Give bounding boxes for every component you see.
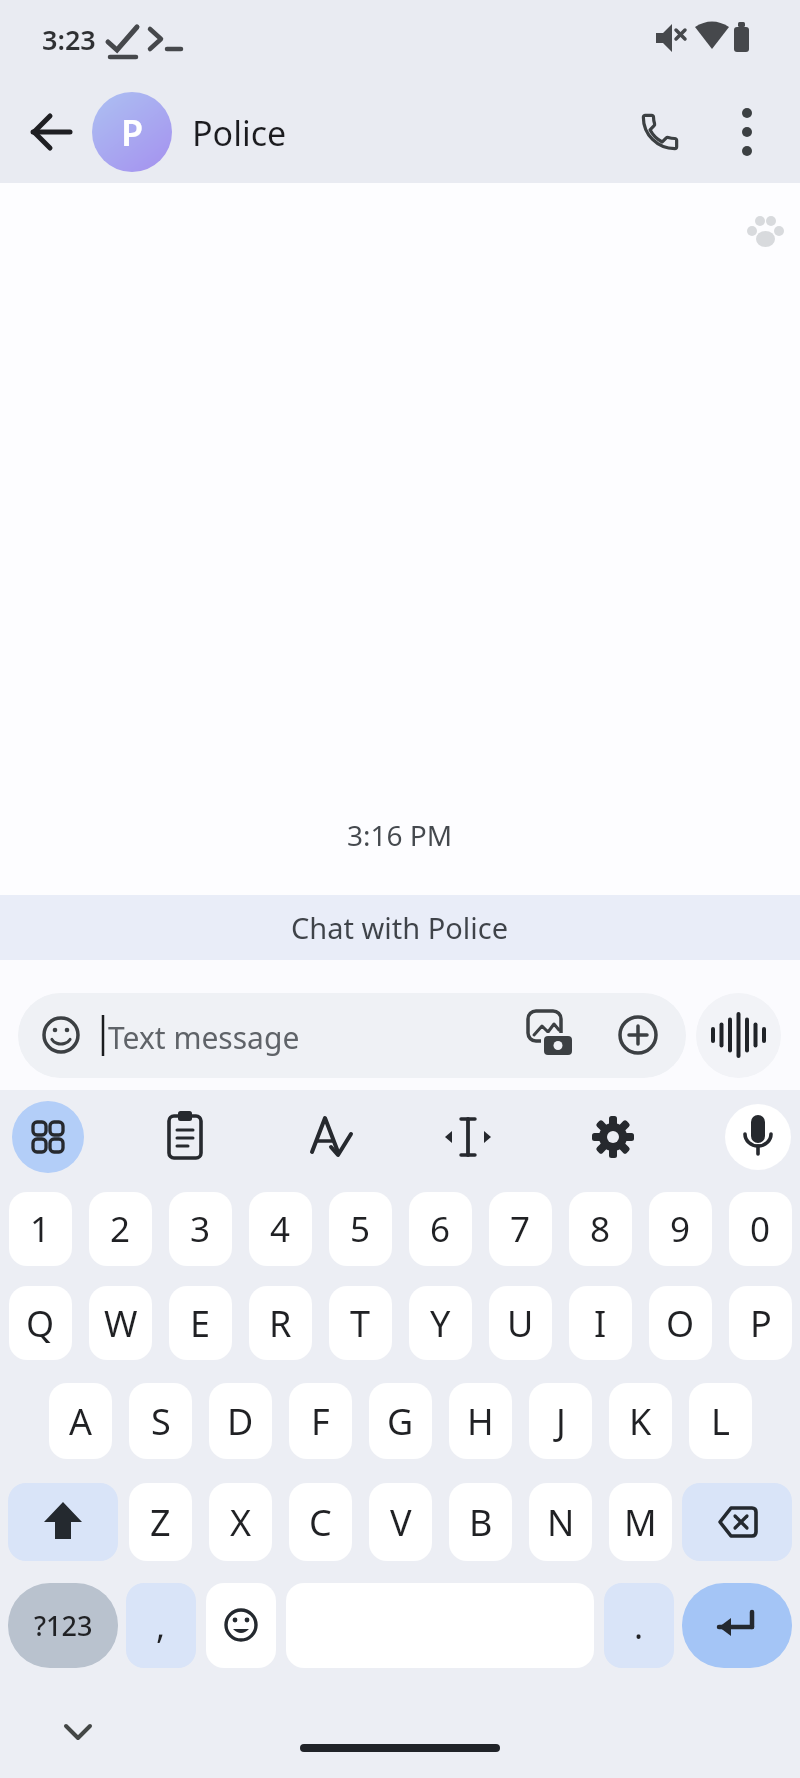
staticText: 3:16 PM bbox=[347, 816, 453, 854]
button[interactable] bbox=[682, 1583, 792, 1668]
staticText: F bbox=[311, 1397, 330, 1446]
staticText: B bbox=[469, 1498, 493, 1547]
button[interactable]: X bbox=[209, 1483, 272, 1561]
staticText: D bbox=[227, 1397, 254, 1446]
button[interactable] bbox=[48, 1702, 108, 1762]
staticText: M bbox=[624, 1498, 657, 1547]
button[interactable]: Z bbox=[129, 1483, 192, 1561]
button[interactable]: 1 bbox=[9, 1192, 72, 1266]
staticText: Z bbox=[150, 1498, 171, 1547]
button[interactable]: ?123 bbox=[8, 1583, 118, 1668]
staticText: O bbox=[666, 1299, 695, 1348]
button[interactable]: H bbox=[449, 1383, 512, 1459]
staticText: X bbox=[230, 1498, 252, 1547]
button[interactable] bbox=[150, 1102, 220, 1172]
staticText: L bbox=[711, 1397, 730, 1446]
staticText: 8 bbox=[590, 1205, 611, 1253]
button[interactable]: , bbox=[126, 1583, 196, 1668]
button[interactable]: S bbox=[129, 1383, 192, 1459]
staticText: N bbox=[547, 1498, 575, 1547]
staticText: Q bbox=[26, 1299, 55, 1348]
button[interactable]: B bbox=[449, 1483, 512, 1561]
button[interactable]: V bbox=[369, 1483, 432, 1561]
staticText: 3 bbox=[190, 1205, 211, 1253]
button[interactable]: F bbox=[289, 1383, 352, 1459]
button[interactable]: N bbox=[529, 1483, 592, 1561]
staticText: 2 bbox=[110, 1205, 131, 1253]
staticText: H bbox=[467, 1397, 494, 1446]
staticText: 1 bbox=[30, 1205, 51, 1253]
staticText: G bbox=[387, 1397, 414, 1446]
button[interactable] bbox=[579, 1102, 649, 1172]
staticText: W bbox=[104, 1299, 138, 1348]
button[interactable]: 7 bbox=[489, 1192, 552, 1266]
button[interactable]: P bbox=[729, 1286, 792, 1360]
button[interactable] bbox=[18, 993, 686, 1078]
staticText: 6 bbox=[430, 1205, 451, 1253]
button[interactable]: 9 bbox=[649, 1192, 712, 1266]
button[interactable] bbox=[682, 1483, 792, 1561]
button[interactable]: 3 bbox=[169, 1192, 232, 1266]
staticText: 0 bbox=[750, 1205, 771, 1253]
button[interactable] bbox=[20, 100, 84, 164]
button[interactable]: W bbox=[89, 1286, 152, 1360]
button[interactable]: 6 bbox=[409, 1192, 472, 1266]
button[interactable]: K bbox=[609, 1383, 672, 1459]
staticText: 7 bbox=[510, 1205, 531, 1253]
button[interactable]: J bbox=[529, 1383, 592, 1459]
button[interactable]: I bbox=[569, 1286, 632, 1360]
button[interactable] bbox=[725, 1104, 791, 1170]
staticText: T bbox=[350, 1299, 371, 1348]
button[interactable]: O bbox=[649, 1286, 712, 1360]
button[interactable]: P bbox=[92, 92, 172, 172]
staticText: J bbox=[556, 1397, 566, 1446]
staticText: . bbox=[634, 1603, 644, 1649]
button[interactable]: . bbox=[604, 1583, 674, 1668]
button[interactable]: Y bbox=[409, 1286, 472, 1360]
button[interactable]: G bbox=[369, 1383, 432, 1459]
staticText: C bbox=[309, 1498, 332, 1547]
staticText: Chat with Police bbox=[291, 908, 509, 947]
staticText: V bbox=[390, 1498, 412, 1547]
button[interactable] bbox=[12, 1101, 84, 1173]
button[interactable]: 5 bbox=[329, 1192, 392, 1266]
button[interactable]: U bbox=[489, 1286, 552, 1360]
staticText: 5 bbox=[350, 1205, 371, 1253]
button[interactable]: E bbox=[169, 1286, 232, 1360]
staticText: E bbox=[190, 1299, 211, 1348]
button[interactable]: T bbox=[329, 1286, 392, 1360]
staticText: ?123 bbox=[34, 1607, 93, 1644]
staticText: Police bbox=[192, 110, 287, 156]
staticText: K bbox=[629, 1397, 652, 1446]
button[interactable] bbox=[433, 1102, 503, 1172]
button[interactable] bbox=[296, 1102, 366, 1172]
staticText: Text message bbox=[108, 1017, 300, 1058]
button[interactable]: D bbox=[209, 1383, 272, 1459]
staticText: S bbox=[151, 1397, 171, 1446]
staticText: 9 bbox=[670, 1205, 691, 1253]
button[interactable]: 2 bbox=[89, 1192, 152, 1266]
button[interactable]: A bbox=[49, 1383, 112, 1459]
staticText: Y bbox=[430, 1299, 451, 1348]
staticText: A bbox=[69, 1397, 93, 1446]
button[interactable]: Q bbox=[9, 1286, 72, 1360]
staticText: , bbox=[156, 1603, 166, 1649]
button[interactable] bbox=[8, 1483, 118, 1561]
button[interactable]: 0 bbox=[729, 1192, 792, 1266]
button[interactable]: C bbox=[289, 1483, 352, 1561]
button[interactable]: M bbox=[609, 1483, 672, 1561]
button[interactable] bbox=[206, 1583, 276, 1668]
button[interactable]: L bbox=[689, 1383, 752, 1459]
button[interactable]: R bbox=[249, 1286, 312, 1360]
button[interactable]: 8 bbox=[569, 1192, 632, 1266]
button[interactable] bbox=[628, 100, 692, 164]
staticText: 3:23 bbox=[42, 21, 96, 58]
button[interactable] bbox=[715, 100, 779, 164]
button[interactable]: 4 bbox=[249, 1192, 312, 1266]
staticText: R bbox=[269, 1299, 292, 1348]
staticText: U bbox=[507, 1299, 534, 1348]
staticText: 4 bbox=[270, 1205, 291, 1253]
button[interactable] bbox=[696, 993, 781, 1078]
staticText: P bbox=[750, 1299, 772, 1348]
